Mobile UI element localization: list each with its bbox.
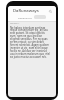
staticText: DaRunaways [13, 8, 39, 13]
button[interactable]: Follow [34, 15, 46, 19]
staticText: Designed by [18, 16, 32, 19]
staticText: Version 1 [10, 22, 20, 25]
button[interactable]: Search [48, 9, 52, 13]
staticText: Ne habeo interdum pertinax reque consect… [10, 26, 51, 59]
